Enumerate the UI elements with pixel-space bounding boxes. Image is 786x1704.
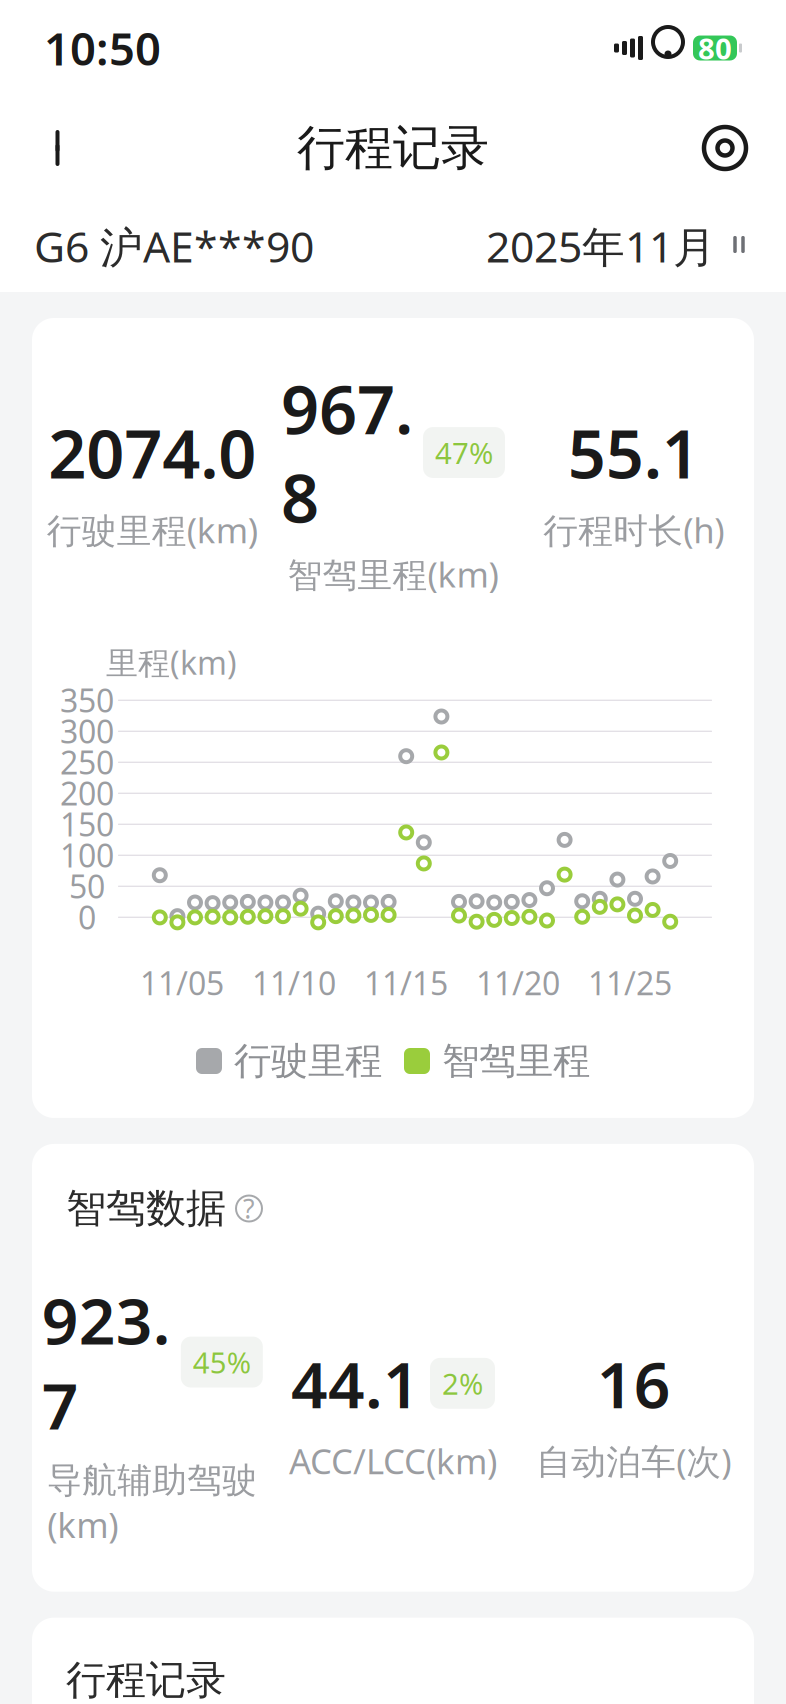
staticText: 行驶里程 bbox=[234, 1038, 382, 1084]
staticText: 47% bbox=[435, 433, 493, 472]
staticText: 10:50 bbox=[44, 18, 161, 78]
button[interactable]: 返回 bbox=[26, 113, 96, 183]
staticText: 100 bbox=[60, 834, 114, 876]
staticText: ACC/LCC(km) bbox=[289, 1438, 497, 1484]
staticText: 11/20 bbox=[476, 962, 560, 1004]
staticText: 45% bbox=[193, 1343, 251, 1382]
button[interactable]: 设置 bbox=[690, 113, 760, 183]
staticText: 2074.0 bbox=[48, 408, 256, 497]
staticText: 行程记录 bbox=[66, 1656, 226, 1704]
staticText: 44.1 bbox=[291, 1341, 420, 1426]
staticText: 11/10 bbox=[252, 962, 336, 1004]
staticText: 智驾里程(km) bbox=[287, 551, 498, 597]
staticText: 55.1 bbox=[568, 408, 700, 497]
button[interactable]: 智驾数据说明 bbox=[236, 1191, 262, 1226]
staticText: 行程记录 bbox=[297, 118, 489, 177]
staticText: 自动泊车(次) bbox=[536, 1438, 731, 1484]
staticText: 50 bbox=[69, 865, 105, 907]
staticText: G6 沪AE***90 bbox=[34, 218, 314, 274]
staticText: 11/05 bbox=[140, 962, 224, 1004]
staticText: 16 bbox=[597, 1341, 671, 1426]
staticText: 11/25 bbox=[588, 962, 672, 1004]
staticText: 11/15 bbox=[364, 962, 448, 1004]
button[interactable]: 2025年11月 bbox=[486, 210, 752, 282]
staticText: 导航辅助驾驶(km) bbox=[47, 1459, 257, 1548]
staticText: 行程时长(h) bbox=[543, 507, 724, 553]
staticText: 350 bbox=[60, 679, 114, 721]
staticText: 智驾里程 bbox=[442, 1038, 590, 1084]
staticText: 80 bbox=[698, 28, 732, 67]
staticText: 2% bbox=[442, 1364, 483, 1403]
staticText: ? bbox=[243, 1191, 255, 1226]
staticText: 150 bbox=[60, 803, 114, 845]
staticText: 行驶里程(km) bbox=[47, 507, 258, 553]
staticText: 智驾数据 bbox=[66, 1184, 226, 1233]
staticText: 923.7 bbox=[42, 1277, 171, 1447]
staticText: 967.8 bbox=[281, 364, 413, 541]
staticText: 0 bbox=[78, 896, 96, 938]
staticText: 里程(km) bbox=[106, 641, 237, 684]
staticText: 300 bbox=[60, 710, 114, 752]
staticText: 200 bbox=[60, 772, 114, 814]
staticText: 250 bbox=[60, 741, 114, 783]
staticText: 2025年11月 bbox=[486, 218, 716, 274]
